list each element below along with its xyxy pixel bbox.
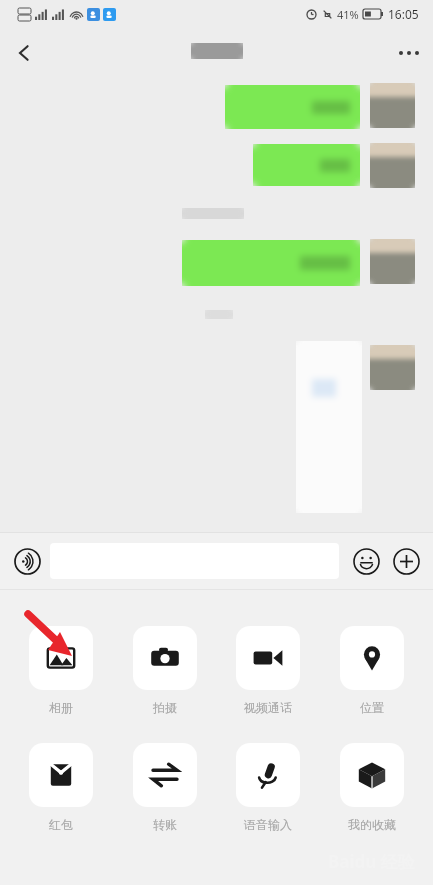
staticText: 41% (337, 7, 359, 22)
staticText: 语音输入 (244, 817, 292, 832)
staticText: 我的收藏 (348, 817, 396, 832)
button[interactable]: Voice input (10, 544, 44, 578)
button[interactable]: 拍摄 (123, 626, 207, 715)
staticText: 红包 (49, 817, 73, 832)
button[interactable]: 语音输入 (226, 743, 310, 832)
button[interactable]: 位置 (330, 626, 414, 715)
staticText: 相册 (49, 700, 73, 715)
staticText: 拍摄 (153, 700, 177, 715)
button[interactable]: 相册 (19, 626, 103, 715)
button[interactable]: Back (0, 29, 48, 77)
button[interactable]: More functions (389, 544, 423, 578)
button[interactable]: 我的收藏 (330, 743, 414, 832)
button[interactable]: 红包 (19, 743, 103, 832)
staticText: 视频通话 (244, 700, 292, 715)
button[interactable]: 视频通话 (226, 626, 310, 715)
staticText: 16:05 (388, 6, 419, 22)
button[interactable]: Emoji (349, 544, 383, 578)
button[interactable]: 转账 (123, 743, 207, 832)
staticText: 位置 (360, 700, 384, 715)
button[interactable]: More options (385, 29, 433, 77)
staticText: 转账 (153, 817, 177, 832)
